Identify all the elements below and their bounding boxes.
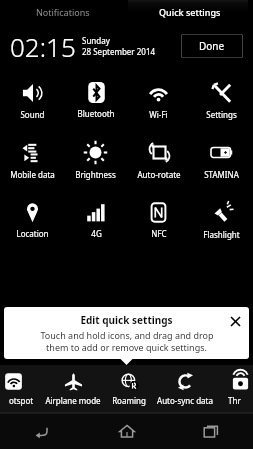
- staticText: Done: [199, 39, 225, 53]
- staticText: Settings: [206, 109, 237, 120]
- button[interactable]: NFC: [147, 197, 170, 239]
- staticText: Quick settings: [159, 6, 221, 18]
- staticText: Bluetooth: [77, 108, 115, 119]
- staticText: STAMINA: [204, 169, 239, 180]
- button[interactable]: Location: [16, 197, 49, 239]
- button[interactable]: STAMINA: [204, 136, 239, 180]
- button[interactable]: Back: [0, 413, 85, 449]
- staticText: 28 September 2014: [82, 46, 156, 57]
- staticText: Sunday: [82, 35, 110, 46]
- button[interactable]: Notifications: [0, 0, 126, 24]
- staticText: Location: [16, 228, 49, 239]
- staticText: them to add or remove quick settings.: [46, 341, 207, 353]
- staticText: Notifications: [36, 6, 90, 18]
- button[interactable]: Recent apps: [169, 413, 253, 449]
- button[interactable]: Flashlight: [203, 197, 240, 240]
- staticText: Flashlight: [203, 229, 240, 240]
- button[interactable]: Thr: [216, 365, 253, 413]
- button[interactable]: Roaming: [104, 365, 154, 413]
- button[interactable]: Quick settings: [126, 0, 253, 24]
- staticText: Auto-sync data: [157, 395, 213, 406]
- button[interactable]: Done: [181, 34, 243, 58]
- staticText: Airplane mode: [45, 395, 101, 406]
- staticText: otspot: [9, 395, 34, 406]
- button[interactable]: Bluetooth: [77, 77, 115, 119]
- button[interactable]: Settings: [206, 77, 237, 120]
- button[interactable]: Mobile data: [10, 137, 55, 180]
- staticText: Sound: [20, 109, 45, 120]
- staticText: Touch and hold icons, and drag and drop: [40, 329, 214, 341]
- button[interactable]: Wi-Fi: [146, 76, 171, 120]
- button[interactable]: Brightness: [75, 136, 116, 180]
- button[interactable]: Close: [227, 313, 243, 329]
- button[interactable]: Home: [85, 413, 169, 449]
- button[interactable]: 4G: [85, 198, 107, 239]
- staticText: Roaming: [112, 395, 146, 406]
- staticText: 4G: [91, 228, 102, 239]
- staticText: Thr: [228, 395, 241, 406]
- staticText: Wi-Fi: [149, 109, 168, 120]
- button[interactable]: otspot: [0, 365, 42, 413]
- staticText: Auto-rotate: [137, 169, 181, 180]
- staticText: 02:15: [10, 29, 76, 64]
- staticText: Edit quick settings: [80, 313, 173, 327]
- button[interactable]: Auto-rotate: [137, 136, 181, 180]
- button[interactable]: Auto-sync data: [154, 365, 216, 413]
- staticText: Brightness: [75, 169, 116, 180]
- staticText: NFC: [151, 228, 167, 239]
- button[interactable]: Airplane mode: [42, 365, 104, 413]
- staticText: Mobile data: [10, 169, 55, 180]
- button[interactable]: Sound: [20, 77, 45, 120]
- button[interactable]: Edit quick settings: [4, 307, 249, 359]
